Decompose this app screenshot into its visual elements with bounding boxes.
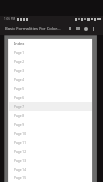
button[interactable]: Page 5 [9, 84, 92, 93]
button[interactable]: Page 9 [9, 120, 92, 129]
staticText: Page 1 [14, 51, 25, 55]
button[interactable]: Index [9, 39, 92, 48]
staticText: Page 2 [14, 60, 25, 64]
staticText: Index [14, 41, 25, 46]
staticText: Page 4 [14, 78, 25, 82]
button[interactable]: Page 12 [9, 147, 92, 156]
staticText: Page 10 [14, 132, 26, 136]
staticText: Page 12 [14, 150, 26, 154]
button[interactable]: Page 1 [9, 48, 92, 57]
button[interactable]: Page 14 [9, 165, 92, 174]
staticText: Page 9 [14, 123, 25, 127]
staticText: Page 5 [14, 87, 25, 91]
button[interactable]: Page 10 [9, 129, 92, 138]
staticText: Page 7 [14, 105, 25, 109]
staticText: Page 14 [14, 168, 26, 172]
button[interactable]: View mode [74, 23, 82, 34]
staticText: Page 11 [14, 141, 26, 145]
button[interactable]: Page 11 [9, 138, 92, 147]
button[interactable]: Page 3 [9, 66, 92, 75]
staticText: Page 15 [14, 176, 26, 180]
staticText: Page 3 [14, 69, 25, 73]
button[interactable]: Page 13 [9, 156, 92, 165]
button[interactable]: Page 15 [9, 174, 92, 182]
button[interactable]: Page 4 [9, 75, 92, 84]
button[interactable]: Brightness [82, 23, 90, 34]
staticText: Page 6 [14, 96, 25, 100]
button[interactable]: Bookmark [66, 23, 74, 34]
staticText: Basic Formalities For Color Chemistry [5, 26, 61, 32]
button[interactable]: Page 7 [9, 102, 92, 111]
staticText: Page 13 [14, 159, 26, 163]
button[interactable]: More options [90, 23, 97, 34]
staticText: Page 8 [14, 114, 25, 118]
button[interactable]: Page 6 [9, 93, 92, 102]
button[interactable]: Page 8 [9, 111, 92, 120]
button[interactable]: Page 2 [9, 57, 92, 66]
staticText: 1:06 PM [4, 17, 16, 21]
